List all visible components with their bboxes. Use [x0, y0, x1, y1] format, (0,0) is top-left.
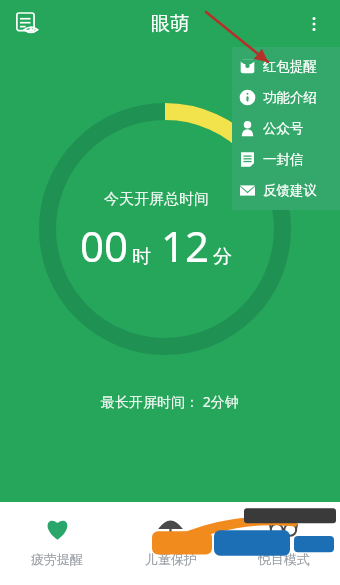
staticText: 悦目模式 — [258, 551, 310, 567]
button[interactable]: Eye care report — [8, 5, 46, 43]
button[interactable]: 反馈建议 — [232, 175, 340, 206]
staticText: 功能介绍 — [263, 89, 317, 106]
staticText: 分 — [213, 245, 232, 269]
staticText: 红包提醒 — [263, 58, 317, 75]
button[interactable]: 红包提醒 — [232, 51, 340, 82]
button[interactable]: 功能介绍 — [232, 82, 340, 113]
button[interactable]: 一封信 — [232, 144, 340, 175]
button[interactable]: 公众号 — [232, 113, 340, 144]
staticText: 一封信 — [263, 151, 304, 168]
staticText: 儿童保护 — [145, 551, 197, 567]
staticText: 最长开屏时间： 2分钟 — [101, 392, 239, 411]
button[interactable]: 疲劳提醒 — [0, 502, 114, 585]
button[interactable]: More options — [294, 4, 334, 44]
staticText: 12 — [161, 217, 210, 274]
button[interactable]: 悦目模式 — [227, 502, 340, 585]
staticText: 眼萌 — [151, 12, 189, 36]
staticText: 公众号 — [263, 120, 304, 137]
staticText: 疲劳提醒 — [31, 551, 83, 567]
staticText: 今天开屏总时间 — [104, 190, 209, 209]
staticText: 时 — [132, 245, 151, 269]
staticText: 反馈建议 — [263, 182, 317, 199]
button[interactable]: 儿童保护 — [114, 502, 227, 585]
staticText: 00 — [80, 217, 129, 274]
